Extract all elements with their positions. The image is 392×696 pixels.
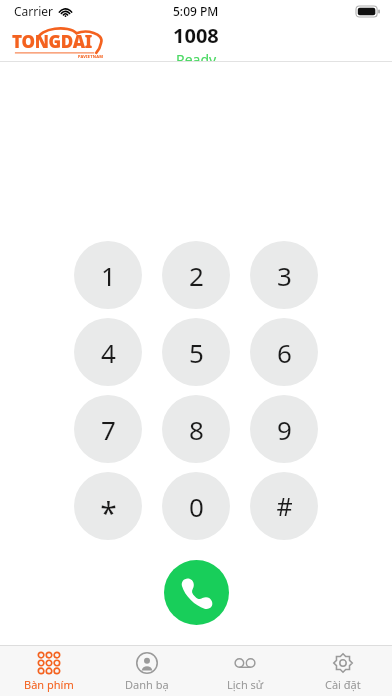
button[interactable]: 8 xyxy=(162,395,230,463)
button[interactable]: Cài đặt xyxy=(294,645,392,696)
staticText: 3 xyxy=(277,258,292,293)
staticText: 4 xyxy=(101,335,116,370)
staticText: 8 xyxy=(189,412,204,447)
staticText: Lịch sử xyxy=(227,677,264,692)
staticText: TONGDAI xyxy=(12,30,92,53)
staticText: 1008 xyxy=(173,22,219,49)
staticText: 5:09 PM xyxy=(173,3,219,19)
button[interactable]: 7 xyxy=(74,395,142,463)
staticText: 9 xyxy=(277,412,292,447)
button[interactable]: Bàn phím xyxy=(0,645,98,696)
button[interactable]: TongDai PA Vietnam logo xyxy=(10,24,108,60)
button[interactable]: 5 xyxy=(162,318,230,386)
staticText: Ready xyxy=(176,50,217,61)
button[interactable]: 4 xyxy=(74,318,142,386)
staticText: * xyxy=(100,492,117,533)
staticText: Carrier xyxy=(14,3,54,19)
staticText: Cài đặt xyxy=(325,677,361,692)
staticText: Danh bạ xyxy=(125,677,169,692)
staticText: 7 xyxy=(101,412,116,447)
button[interactable]: 2 xyxy=(162,241,230,309)
button[interactable]: Danh bạ xyxy=(98,645,196,696)
button[interactable]: 0 xyxy=(162,472,230,540)
staticText: 0 xyxy=(189,489,204,524)
staticText: 6 xyxy=(277,335,292,370)
button[interactable]: Lịch sử xyxy=(196,645,294,696)
staticText: Bàn phím xyxy=(24,677,74,692)
button[interactable]: * xyxy=(74,472,142,540)
staticText: 5 xyxy=(189,335,204,370)
button[interactable]: 6 xyxy=(250,318,318,386)
button[interactable]: Call xyxy=(164,560,229,625)
staticText: 1 xyxy=(101,258,116,293)
button[interactable]: 9 xyxy=(250,395,318,463)
staticText: # xyxy=(276,489,293,523)
staticText: PAVIETNAM xyxy=(78,54,104,59)
staticText: 2 xyxy=(189,258,204,293)
button[interactable]: 1 xyxy=(74,241,142,309)
button[interactable]: 3 xyxy=(250,241,318,309)
button[interactable]: # xyxy=(250,472,318,540)
